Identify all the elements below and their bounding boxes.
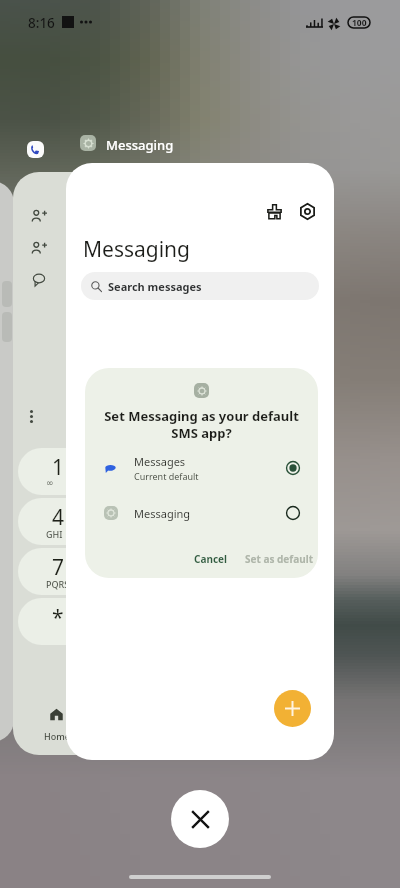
staticText: Search messages [108,279,202,294]
button[interactable]: 1 [18,448,104,495]
staticText: Home [44,730,70,742]
button[interactable]: Phone app task [13,172,188,755]
staticText: 7 [52,553,65,582]
staticText: 8:16 [28,14,55,32]
button[interactable]: Set as default [239,547,318,571]
staticText: Messages [134,454,186,469]
staticText: ∞ [46,478,54,488]
staticText: * [52,603,64,632]
button[interactable]: Search messages [81,272,319,300]
staticText: Set Messaging as your default SMS app? [104,407,299,442]
button[interactable]: Start new conversation [274,690,311,727]
staticText: PQRS [46,578,70,590]
staticText: 1 [52,453,65,482]
button[interactable]: Messaging [85,491,318,535]
button[interactable]: 7 [18,548,104,595]
staticText: GHI [46,528,63,540]
button[interactable]: Messages [85,446,318,490]
button[interactable]: * [18,598,104,645]
button[interactable]: Cancel [188,547,234,571]
staticText: 100 [352,17,367,28]
button[interactable]: Close all apps [171,790,229,848]
staticText: Set as default [245,552,313,566]
staticText: Cancel [194,552,228,566]
staticText: Messaging [106,136,174,154]
staticText: Messaging [134,506,286,521]
staticText: 4 [52,503,65,532]
button[interactable]: Clean up [259,196,289,226]
button[interactable]: 4 [18,498,104,545]
staticText: Messaging [83,235,191,264]
staticText: Current default [134,470,199,482]
button[interactable]: Settings [292,196,322,226]
